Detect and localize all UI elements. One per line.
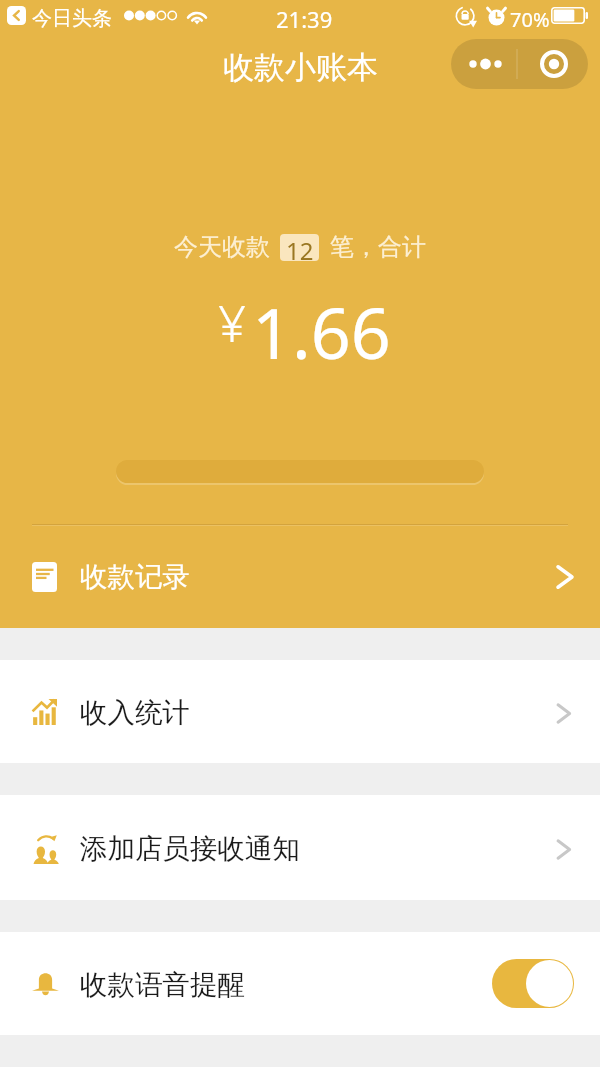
staticText: 笔，合计 — [330, 232, 426, 262]
staticText: 收款语音提醒 — [80, 968, 245, 1003]
button[interactable]: Back — [7, 6, 26, 25]
button[interactable]: 添加店员接收通知 — [0, 795, 600, 900]
staticText: 今天收款 — [174, 232, 270, 262]
staticText: 12 — [286, 234, 314, 261]
staticText: 收入统计 — [80, 696, 190, 731]
staticText: 21:39 — [276, 4, 333, 34]
button[interactable]: 收款语音提醒 — [0, 932, 600, 1035]
staticText: 收款记录 — [80, 560, 190, 595]
staticText: 1.66 — [252, 284, 391, 379]
staticText: 添加店员接收通知 — [80, 832, 300, 867]
button[interactable]: Voice reminder toggle — [492, 959, 574, 1008]
staticText: ¥ — [218, 290, 246, 357]
staticText: 70% — [510, 6, 550, 33]
button[interactable]: 收入统计 — [0, 660, 600, 763]
staticText: 今日头条 — [32, 6, 112, 31]
staticText: 收款小账本 — [223, 48, 378, 87]
button[interactable]: 收款记录 — [0, 533, 600, 621]
button[interactable]: More options and close — [451, 39, 588, 89]
